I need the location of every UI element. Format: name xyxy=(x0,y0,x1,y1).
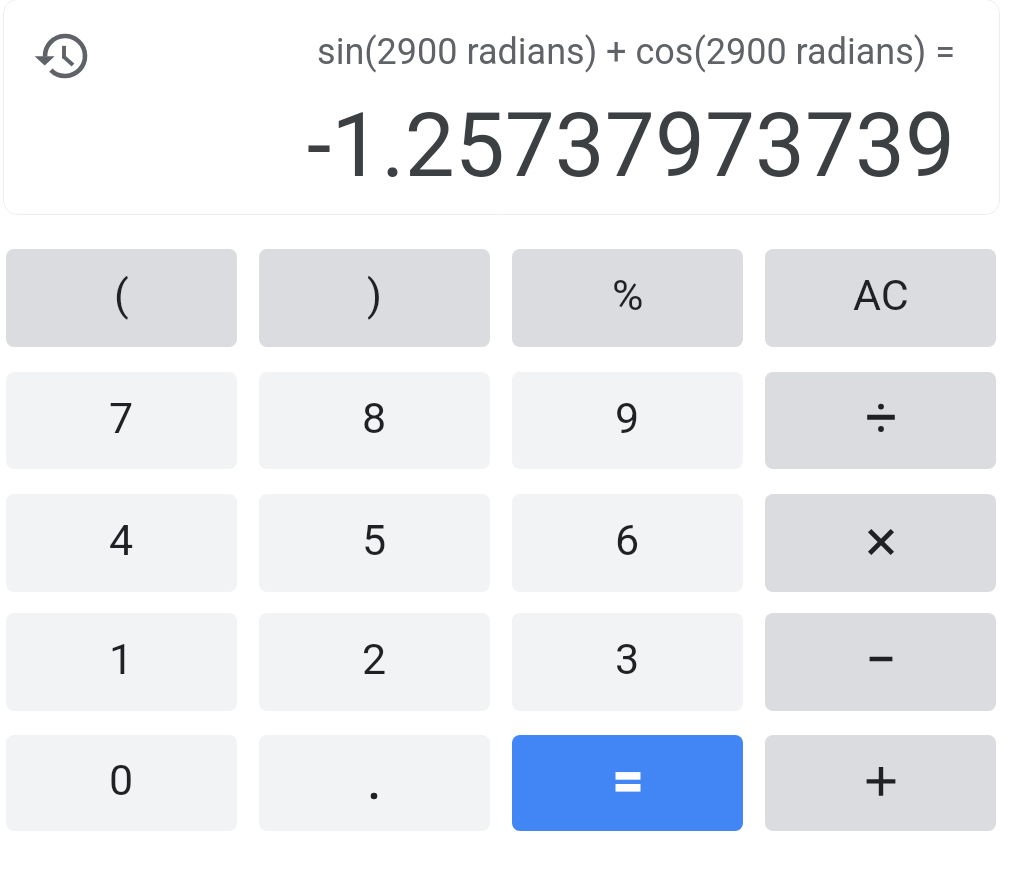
staticText: 4 xyxy=(109,515,134,565)
button[interactable]: 7 xyxy=(6,372,237,469)
button[interactable]: Add xyxy=(765,735,996,831)
staticText: 2 xyxy=(362,634,387,684)
staticText: ( xyxy=(114,270,129,320)
button[interactable]: 9 xyxy=(512,372,743,469)
staticText: 5 xyxy=(362,515,387,565)
staticText: 8 xyxy=(362,393,387,443)
staticText: 0 xyxy=(109,755,134,805)
button[interactable]: Divide xyxy=(765,372,996,469)
staticText: 1 xyxy=(109,634,134,684)
staticText: sin(2900 radians) + cos(2900 radians) = xyxy=(0,31,955,73)
button[interactable]: 4 xyxy=(6,494,237,592)
staticText: -1.25737973739 xyxy=(0,93,955,197)
staticText: ) xyxy=(367,270,382,320)
staticText: 7 xyxy=(109,393,134,443)
button[interactable]: 2 xyxy=(259,613,490,711)
button[interactable]: 1 xyxy=(6,613,237,711)
button[interactable]: ) xyxy=(259,249,490,347)
button[interactable]: Multiply xyxy=(765,494,996,592)
button[interactable]: 6 xyxy=(512,494,743,592)
button[interactable]: 0 xyxy=(6,735,237,831)
button[interactable]: 8 xyxy=(259,372,490,469)
staticText: 3 xyxy=(615,634,640,684)
button[interactable]: AC xyxy=(765,249,996,347)
button[interactable]: 3 xyxy=(512,613,743,711)
button[interactable]: History xyxy=(21,12,109,100)
button[interactable]: Decimal point xyxy=(259,735,490,831)
button[interactable]: % xyxy=(512,249,743,347)
staticText: AC xyxy=(853,270,909,320)
button[interactable]: 5 xyxy=(259,494,490,592)
staticText: % xyxy=(612,270,644,320)
button[interactable]: Subtract xyxy=(765,613,996,711)
button[interactable]: Equals xyxy=(512,735,743,831)
staticText: 6 xyxy=(615,515,640,565)
button[interactable]: ( xyxy=(6,249,237,347)
staticText: 9 xyxy=(615,393,640,443)
